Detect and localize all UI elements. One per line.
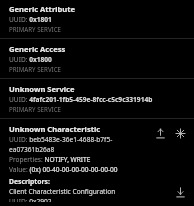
staticText: UUID: 4fafc201-1fb5-459e-8fcc-c5c9c33191… [9,95,153,104]
button[interactable]: Unknown Service [0,79,194,118]
staticText: PRIMARY SERVICE [9,25,62,33]
staticText: Generic Attribute [9,4,76,14]
button[interactable]: Unknown Characteristic [0,119,194,176]
button[interactable]: Read descriptor [171,183,189,201]
staticText: UUID: 0x1801 [9,15,52,24]
staticText: Properties: NOTIFY, WRITE [9,155,91,164]
staticText: PRIMARY SERVICE [9,65,62,73]
button[interactable]: Descriptors: [0,176,194,206]
staticText: PRIMARY SERVICE [9,105,62,113]
button[interactable]: Write value [151,124,169,142]
button[interactable]: Generic Attribute [0,0,194,38]
staticText: UUID: beb5483e-36e1-4688-b7f5-ea07361b26… [9,135,151,154]
staticText: Unknown Service [9,84,75,94]
staticText: UUID: 0x1800 [9,55,52,64]
button[interactable]: Toggle notifications [171,124,189,142]
staticText: UUID: 0x2902 [9,197,52,202]
staticText: Descriptors: [9,177,50,186]
staticText: Generic Access [9,44,66,54]
staticText: Value: (0x) 00-40-00-00-00-00-00-00 [9,165,118,174]
staticText: Unknown Characteristic [9,124,101,134]
staticText: Client Characteristic Configuration [9,187,116,196]
button[interactable]: Generic Access [0,39,194,78]
